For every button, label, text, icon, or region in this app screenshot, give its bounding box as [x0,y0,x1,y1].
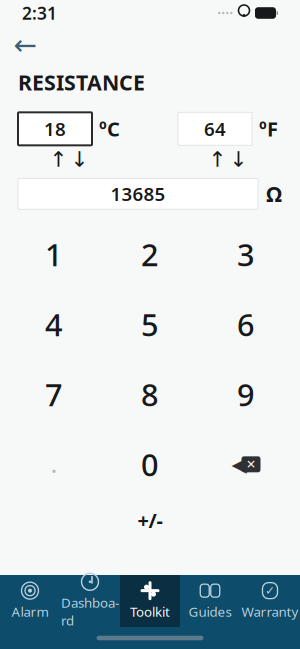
button[interactable]: 7 [6,359,102,429]
staticText: Dashboard [61,594,119,629]
staticText: Toolkit [130,603,170,620]
staticText: ← [13,29,36,61]
staticText: 13685 [110,181,165,206]
staticText: ºF [259,116,278,142]
staticText: 18 [44,116,66,141]
button[interactable]: 9 [198,359,294,429]
button[interactable]: 0 [102,429,198,499]
staticText: 2 [141,234,159,275]
staticText: 0 [141,444,159,485]
staticText: +/- [137,507,162,534]
staticText: 8 [141,374,159,415]
button[interactable]: 6 [198,289,294,359]
staticText: Guides [188,603,231,620]
staticText: 9 [237,374,255,415]
button[interactable]: Delete [198,429,294,499]
button[interactable]: 5 [102,289,198,359]
button[interactable]: Swap ºC direction [32,148,106,170]
button[interactable]: 13685 [18,178,258,209]
staticText: 4 [45,304,63,345]
button[interactable]: 8 [102,359,198,429]
staticText: RESISTANCE [18,68,145,96]
button[interactable]: +/- [120,499,180,541]
button[interactable]: 2 [102,219,198,289]
staticText: Warranty [241,603,298,620]
staticText: Ω [266,180,282,208]
button[interactable]: 1 [6,219,102,289]
button[interactable]: Dashboard [60,575,120,627]
staticText: 3 [237,234,255,275]
staticText: 7 [45,374,63,415]
button[interactable]: Alarm [0,575,60,627]
button[interactable]: 64 [178,112,252,145]
button[interactable]: ✓ [240,575,300,627]
button[interactable]: Guides [180,575,240,627]
staticText: ↓ [70,147,88,171]
button[interactable]: 3 [198,219,294,289]
staticText: 6 [237,304,255,345]
staticText: ºC [99,116,120,142]
button[interactable]: Back [8,30,42,60]
staticText: ↑ [49,147,67,171]
staticText: ◀ [231,453,246,476]
staticText: ✓ [265,584,275,597]
button[interactable]: 4 [6,289,102,359]
staticText: Alarm [11,603,48,620]
staticText: 5 [141,304,159,345]
staticText: ↑ [208,147,226,171]
button[interactable]: 18 [18,112,92,145]
staticText: 64 [204,116,226,141]
staticText: 2:31 [22,1,57,24]
button[interactable]: Swap ºF direction [191,148,265,170]
staticText: 1 [45,234,63,275]
button[interactable]: Toolkit [120,575,180,627]
staticText: ✕ [246,457,256,471]
staticText: ↓ [229,147,247,171]
